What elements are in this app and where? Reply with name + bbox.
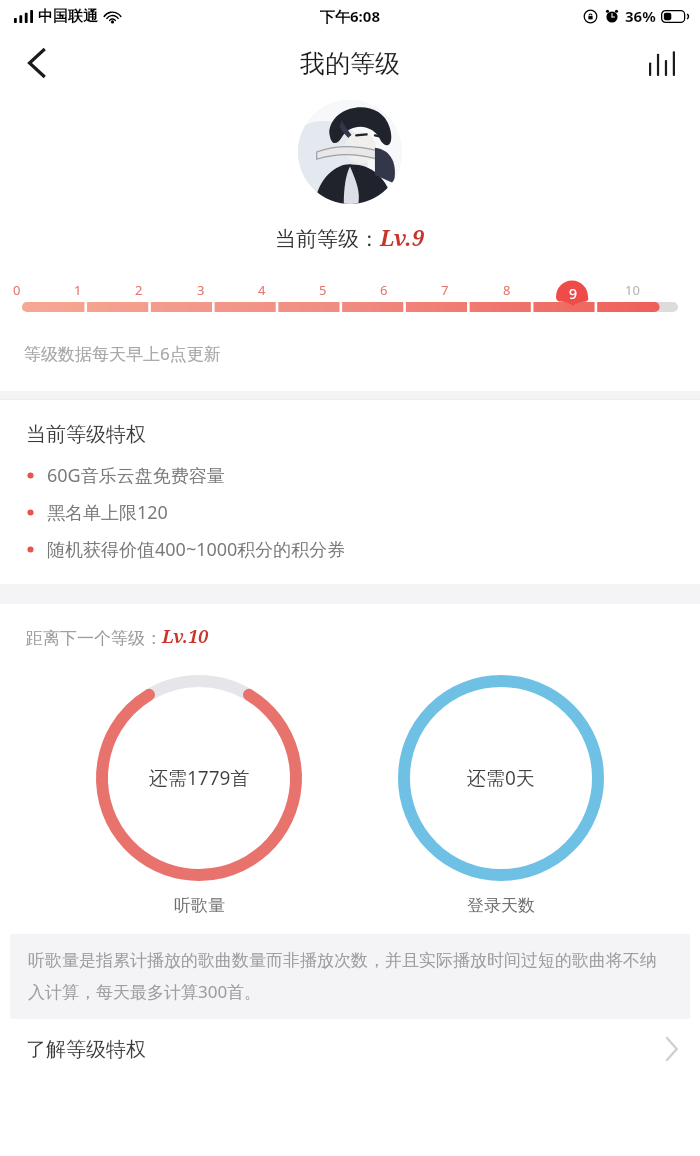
staticText: 随机获得价值400~1000积分的积分券 — [47, 537, 346, 562]
button[interactable]: 了解等级特权 — [0, 1019, 700, 1079]
staticText: 6 — [380, 281, 388, 299]
staticText: 我的等级 — [300, 48, 400, 79]
staticText: 当前等级特权 — [26, 422, 146, 447]
staticText: 下午6:08 — [320, 6, 380, 26]
staticText: 60G音乐云盘免费容量 — [47, 463, 225, 488]
staticText: 8 — [503, 281, 511, 299]
staticText: 9 — [569, 284, 578, 303]
button[interactable]: 还需1779首 — [96, 675, 302, 881]
staticText: 当前等级： — [275, 226, 380, 252]
staticText: 1 — [74, 281, 82, 299]
staticText: 等级数据每天早上6点更新 — [24, 342, 221, 365]
staticText: 登录天数 — [467, 895, 535, 916]
staticText: 距离下一个等级： — [26, 628, 162, 649]
staticText: Lv.9 — [380, 222, 425, 252]
staticText: 0 — [13, 281, 21, 299]
staticText: 还需1779首 — [149, 765, 250, 791]
button[interactable]: 还需0天 — [398, 675, 604, 881]
button[interactable]: Equalizer — [636, 37, 688, 89]
staticText: 听歌量是指累计播放的歌曲数量而非播放次数，并且实际播放时间过短的歌曲将不纳入计算… — [28, 950, 672, 1003]
staticText: 黑名单上限120 — [47, 500, 168, 525]
staticText: Lv.10 — [162, 624, 209, 649]
staticText: 还需0天 — [467, 765, 535, 791]
staticText: 5 — [319, 281, 327, 299]
button[interactable]: Back — [10, 36, 64, 90]
staticText: 7 — [441, 281, 449, 299]
staticText: 听歌量 — [174, 895, 225, 916]
button[interactable]: Avatar — [298, 100, 402, 204]
staticText: 36% — [625, 6, 656, 26]
staticText: 中国联通 — [38, 7, 98, 26]
staticText: 10 — [625, 281, 640, 299]
staticText: 了解等级特权 — [26, 1037, 146, 1062]
staticText: 3 — [197, 281, 205, 299]
staticText: 9 — [564, 281, 572, 299]
staticText: 2 — [135, 281, 143, 299]
staticText: 4 — [258, 281, 266, 299]
